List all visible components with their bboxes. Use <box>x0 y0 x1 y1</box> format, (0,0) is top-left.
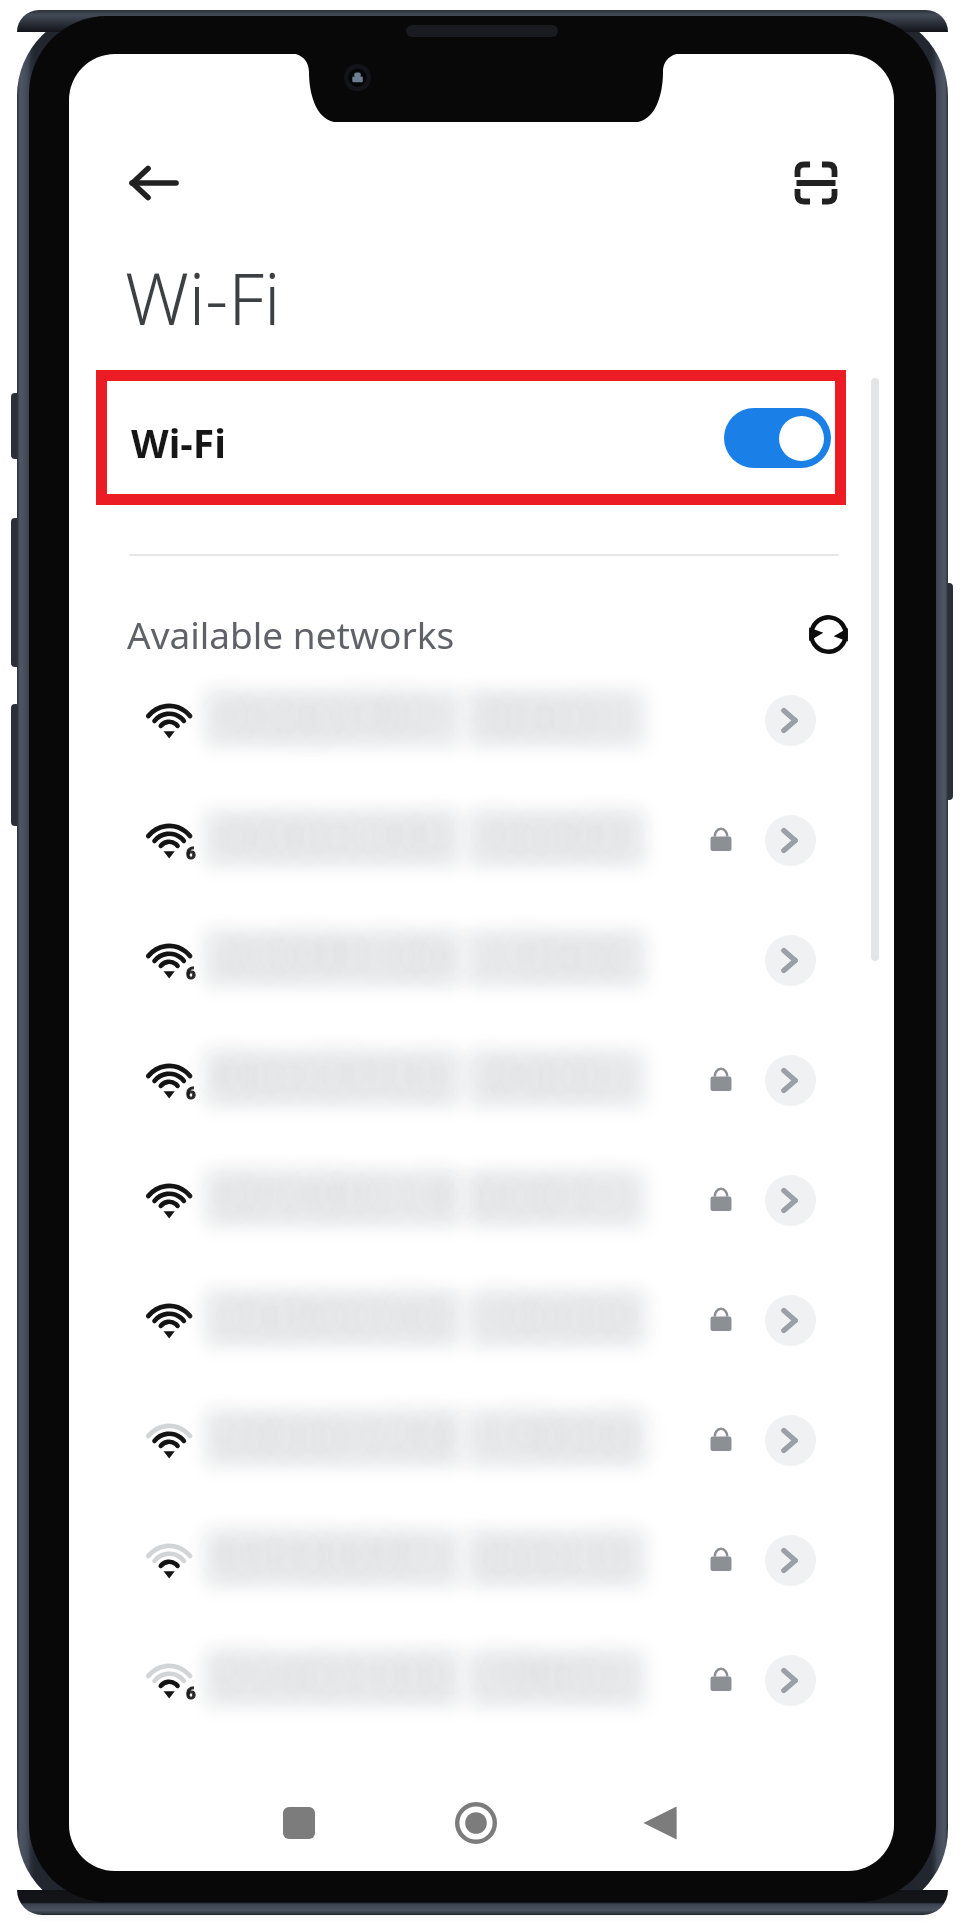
button[interactable]: Network details <box>127 1144 839 1256</box>
button[interactable]: Network details <box>765 1655 816 1706</box>
button[interactable]: Network details <box>765 1055 816 1106</box>
button[interactable]: Network details <box>127 1384 839 1496</box>
staticText: Wi-Fi <box>125 249 281 346</box>
button[interactable]: Network details <box>765 1535 816 1586</box>
button[interactable]: Wi-Fi <box>96 371 858 504</box>
button[interactable]: Network details <box>127 1024 839 1136</box>
button[interactable]: Network details <box>127 1264 839 1376</box>
button[interactable]: Network details <box>765 1175 816 1226</box>
button[interactable]: Scan QR code <box>779 146 853 220</box>
button[interactable]: Home <box>436 1783 516 1863</box>
button[interactable]: Network details <box>765 815 816 866</box>
button[interactable]: Network details <box>127 904 839 1016</box>
button[interactable]: Network details <box>765 695 816 746</box>
button[interactable]: Network details <box>127 784 839 896</box>
button[interactable]: Back <box>620 1783 700 1863</box>
button[interactable]: Network details <box>127 1624 839 1736</box>
button[interactable]: Back <box>108 137 200 229</box>
button[interactable]: Network details <box>765 1415 816 1466</box>
staticText: Available networks <box>127 609 455 659</box>
button[interactable]: Network details <box>127 1504 839 1616</box>
button[interactable]: Network details <box>127 664 839 776</box>
button[interactable]: Network details <box>765 935 816 986</box>
button[interactable]: Network details <box>765 1295 816 1346</box>
button[interactable]: Refresh networks <box>796 602 861 667</box>
staticText: Wi-Fi <box>131 416 226 469</box>
button[interactable]: Recent apps <box>259 1783 339 1863</box>
